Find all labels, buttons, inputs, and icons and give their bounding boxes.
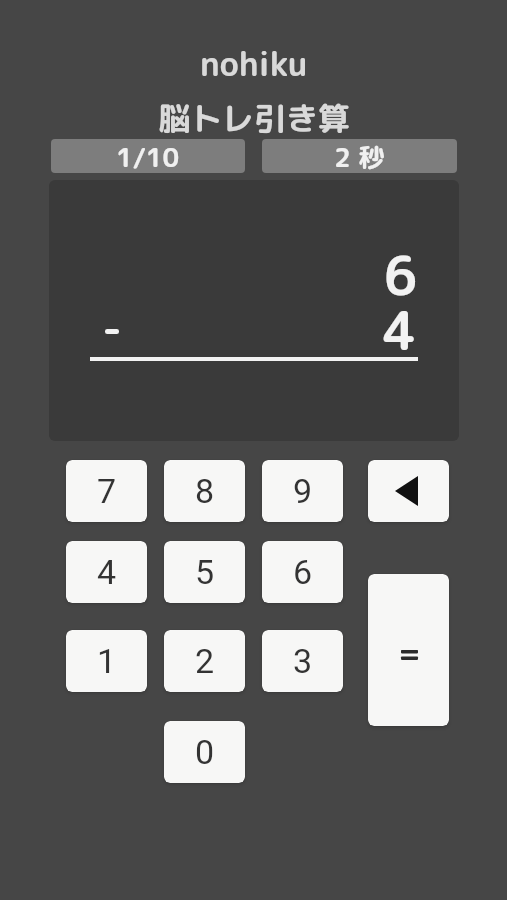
button[interactable]: 7 xyxy=(66,460,147,522)
button[interactable]: 8 xyxy=(164,460,245,522)
staticText: 脳トレ引き算 xyxy=(158,96,351,141)
staticText: 5 xyxy=(195,552,215,592)
staticText: 0 xyxy=(195,732,215,772)
staticText: 2 xyxy=(195,641,215,681)
staticText: 1 xyxy=(97,641,117,681)
button[interactable]: 2 秒 xyxy=(262,139,457,173)
button[interactable]: 9 xyxy=(262,460,343,522)
staticText: 6 xyxy=(293,552,313,592)
button[interactable]: 1/10 xyxy=(51,139,245,173)
staticText: 8 xyxy=(195,471,215,511)
button[interactable]: 3 xyxy=(262,630,343,692)
staticText: 7 xyxy=(97,471,117,511)
button[interactable]: 0 xyxy=(164,721,245,783)
staticText: 6 xyxy=(384,239,418,312)
staticText: 2 秒 xyxy=(334,139,385,173)
staticText: 4 xyxy=(97,552,117,592)
button[interactable]: 4 xyxy=(66,541,147,603)
button[interactable]: 6 xyxy=(262,541,343,603)
staticText: 9 xyxy=(293,471,313,511)
staticText: 1/10 xyxy=(116,139,180,173)
button[interactable] xyxy=(368,574,449,726)
button[interactable]: 5 xyxy=(164,541,245,603)
button[interactable]: 1 xyxy=(66,630,147,692)
staticText: 4 xyxy=(383,294,417,367)
button[interactable] xyxy=(368,460,449,522)
staticText: 3 xyxy=(293,641,313,681)
button[interactable]: 2 xyxy=(164,630,245,692)
staticText: nohiku xyxy=(200,41,308,87)
